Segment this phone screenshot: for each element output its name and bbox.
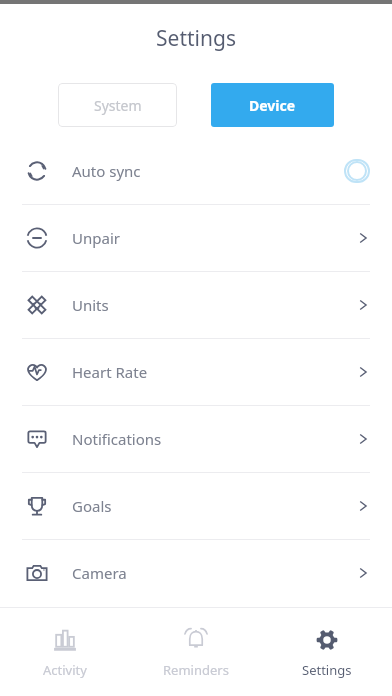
staticText: Units <box>72 295 344 315</box>
staticText: Notifications <box>72 429 344 449</box>
button[interactable]: System <box>58 83 177 127</box>
other: Settings <box>314 627 340 653</box>
button[interactable]: Goals <box>0 473 392 539</box>
button[interactable]: Reminders <box>130 608 261 696</box>
other: Open <box>356 566 370 580</box>
button[interactable]: Units <box>0 272 392 338</box>
other: Open <box>356 231 370 245</box>
staticText: Goals <box>72 496 344 516</box>
button[interactable]: Notifications <box>0 406 392 472</box>
button[interactable]: Activity <box>0 608 130 696</box>
button[interactable]: Settings <box>261 608 392 696</box>
button[interactable]: Device <box>211 83 334 127</box>
button[interactable]: Auto sync toggle <box>344 159 370 183</box>
other: Activity <box>52 627 78 653</box>
other: Reminders <box>183 627 209 653</box>
staticText: Settings <box>156 24 236 53</box>
staticText: System <box>94 96 142 115</box>
button[interactable]: Heart Rate <box>0 339 392 405</box>
button[interactable]: Unpair <box>0 205 392 271</box>
other: Open <box>356 298 370 312</box>
staticText: Reminders <box>163 661 229 679</box>
staticText: Unpair <box>72 228 344 248</box>
staticText: Auto sync <box>72 161 344 181</box>
staticText: Heart Rate <box>72 362 344 382</box>
staticText: Device <box>249 96 296 115</box>
other: Open <box>356 365 370 379</box>
staticText: Camera <box>72 563 344 583</box>
staticText: Settings <box>302 661 352 679</box>
staticText: Activity <box>43 661 87 679</box>
other: Open <box>356 499 370 513</box>
other: Open <box>356 432 370 446</box>
button[interactable]: Camera <box>0 540 392 606</box>
button[interactable]: Auto sync <box>0 138 392 204</box>
